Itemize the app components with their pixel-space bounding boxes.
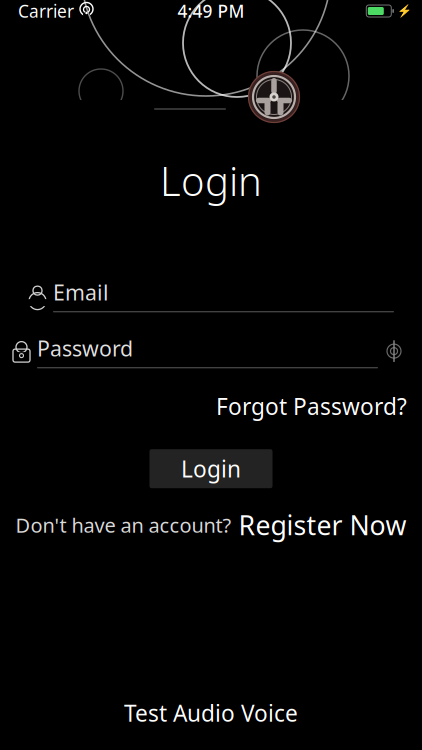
button[interactable]: Forgot Password? bbox=[216, 387, 407, 425]
staticText: Carrier bbox=[18, 0, 74, 22]
button[interactable]: Test Audio Voice bbox=[124, 698, 298, 728]
button[interactable]: Login bbox=[149, 449, 272, 488]
staticText: Forgot Password? bbox=[216, 391, 407, 421]
staticText: 4:49 PM bbox=[177, 0, 244, 22]
staticText: Password bbox=[37, 334, 133, 362]
staticText: ⚡ bbox=[397, 4, 412, 18]
button[interactable]: Show password bbox=[378, 335, 410, 367]
staticText: Email bbox=[53, 278, 109, 306]
staticText: Register Now bbox=[238, 507, 406, 543]
staticText: Login bbox=[181, 454, 241, 484]
button[interactable]: Register Now bbox=[238, 507, 406, 543]
staticText: Test Audio Voice bbox=[124, 698, 298, 728]
staticText: Login bbox=[160, 154, 262, 207]
staticText: Don't have an account? bbox=[15, 512, 231, 538]
